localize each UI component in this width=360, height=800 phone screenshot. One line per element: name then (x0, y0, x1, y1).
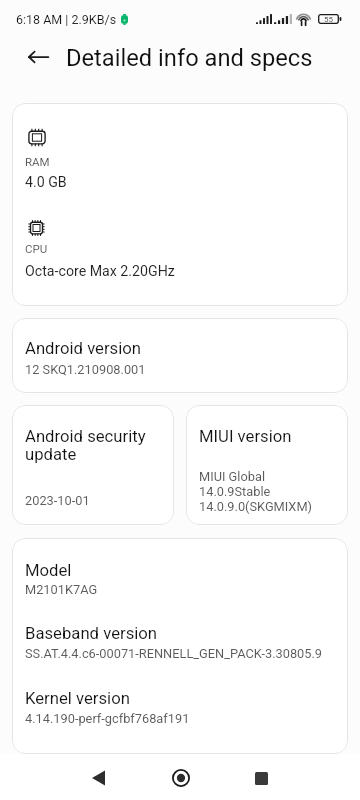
staticText: Detailed info and specs (66, 44, 313, 72)
staticText: M2101K7AG (25, 582, 98, 597)
staticText: SS.AT.4.4.c6-00071-RENNELL_GEN_PACK-3.30… (25, 646, 323, 661)
staticText: RAM (25, 155, 50, 168)
staticText: Model (25, 561, 72, 581)
button[interactable]: Back (70, 755, 127, 800)
button[interactable]: RAM (12, 103, 348, 306)
button[interactable]: Back (24, 43, 52, 71)
button[interactable]: MIUI version (186, 405, 348, 525)
staticText: 6:18 AM | 2.9KB/s (16, 12, 117, 27)
staticText: 55 (324, 15, 333, 24)
button[interactable]: Model (12, 538, 348, 754)
staticText: Android security update (25, 427, 164, 464)
staticText: 2023-10-01 (25, 493, 90, 508)
staticText: Baseband version (25, 624, 158, 644)
staticText: 12 SKQ1.210908.001 (25, 362, 146, 377)
button[interactable]: Android version (12, 318, 348, 393)
staticText: MIUI version (199, 427, 292, 447)
button[interactable]: Home (152, 755, 209, 800)
staticText: Android version (25, 339, 142, 359)
staticText: 4.0 GB (25, 174, 67, 191)
staticText: MIUI Global 14.0.9Stable 14.0.9.0(SKGMIX… (199, 469, 313, 514)
staticText: CPU (25, 242, 48, 255)
button[interactable]: Recent apps (233, 755, 290, 800)
button[interactable]: Android security update (12, 405, 174, 525)
staticText: Octa-core Max 2.20GHz (25, 263, 175, 280)
staticText: 4.14.190-perf-gcfbf768af191 (25, 711, 190, 726)
staticText: Kernel version (25, 689, 130, 709)
